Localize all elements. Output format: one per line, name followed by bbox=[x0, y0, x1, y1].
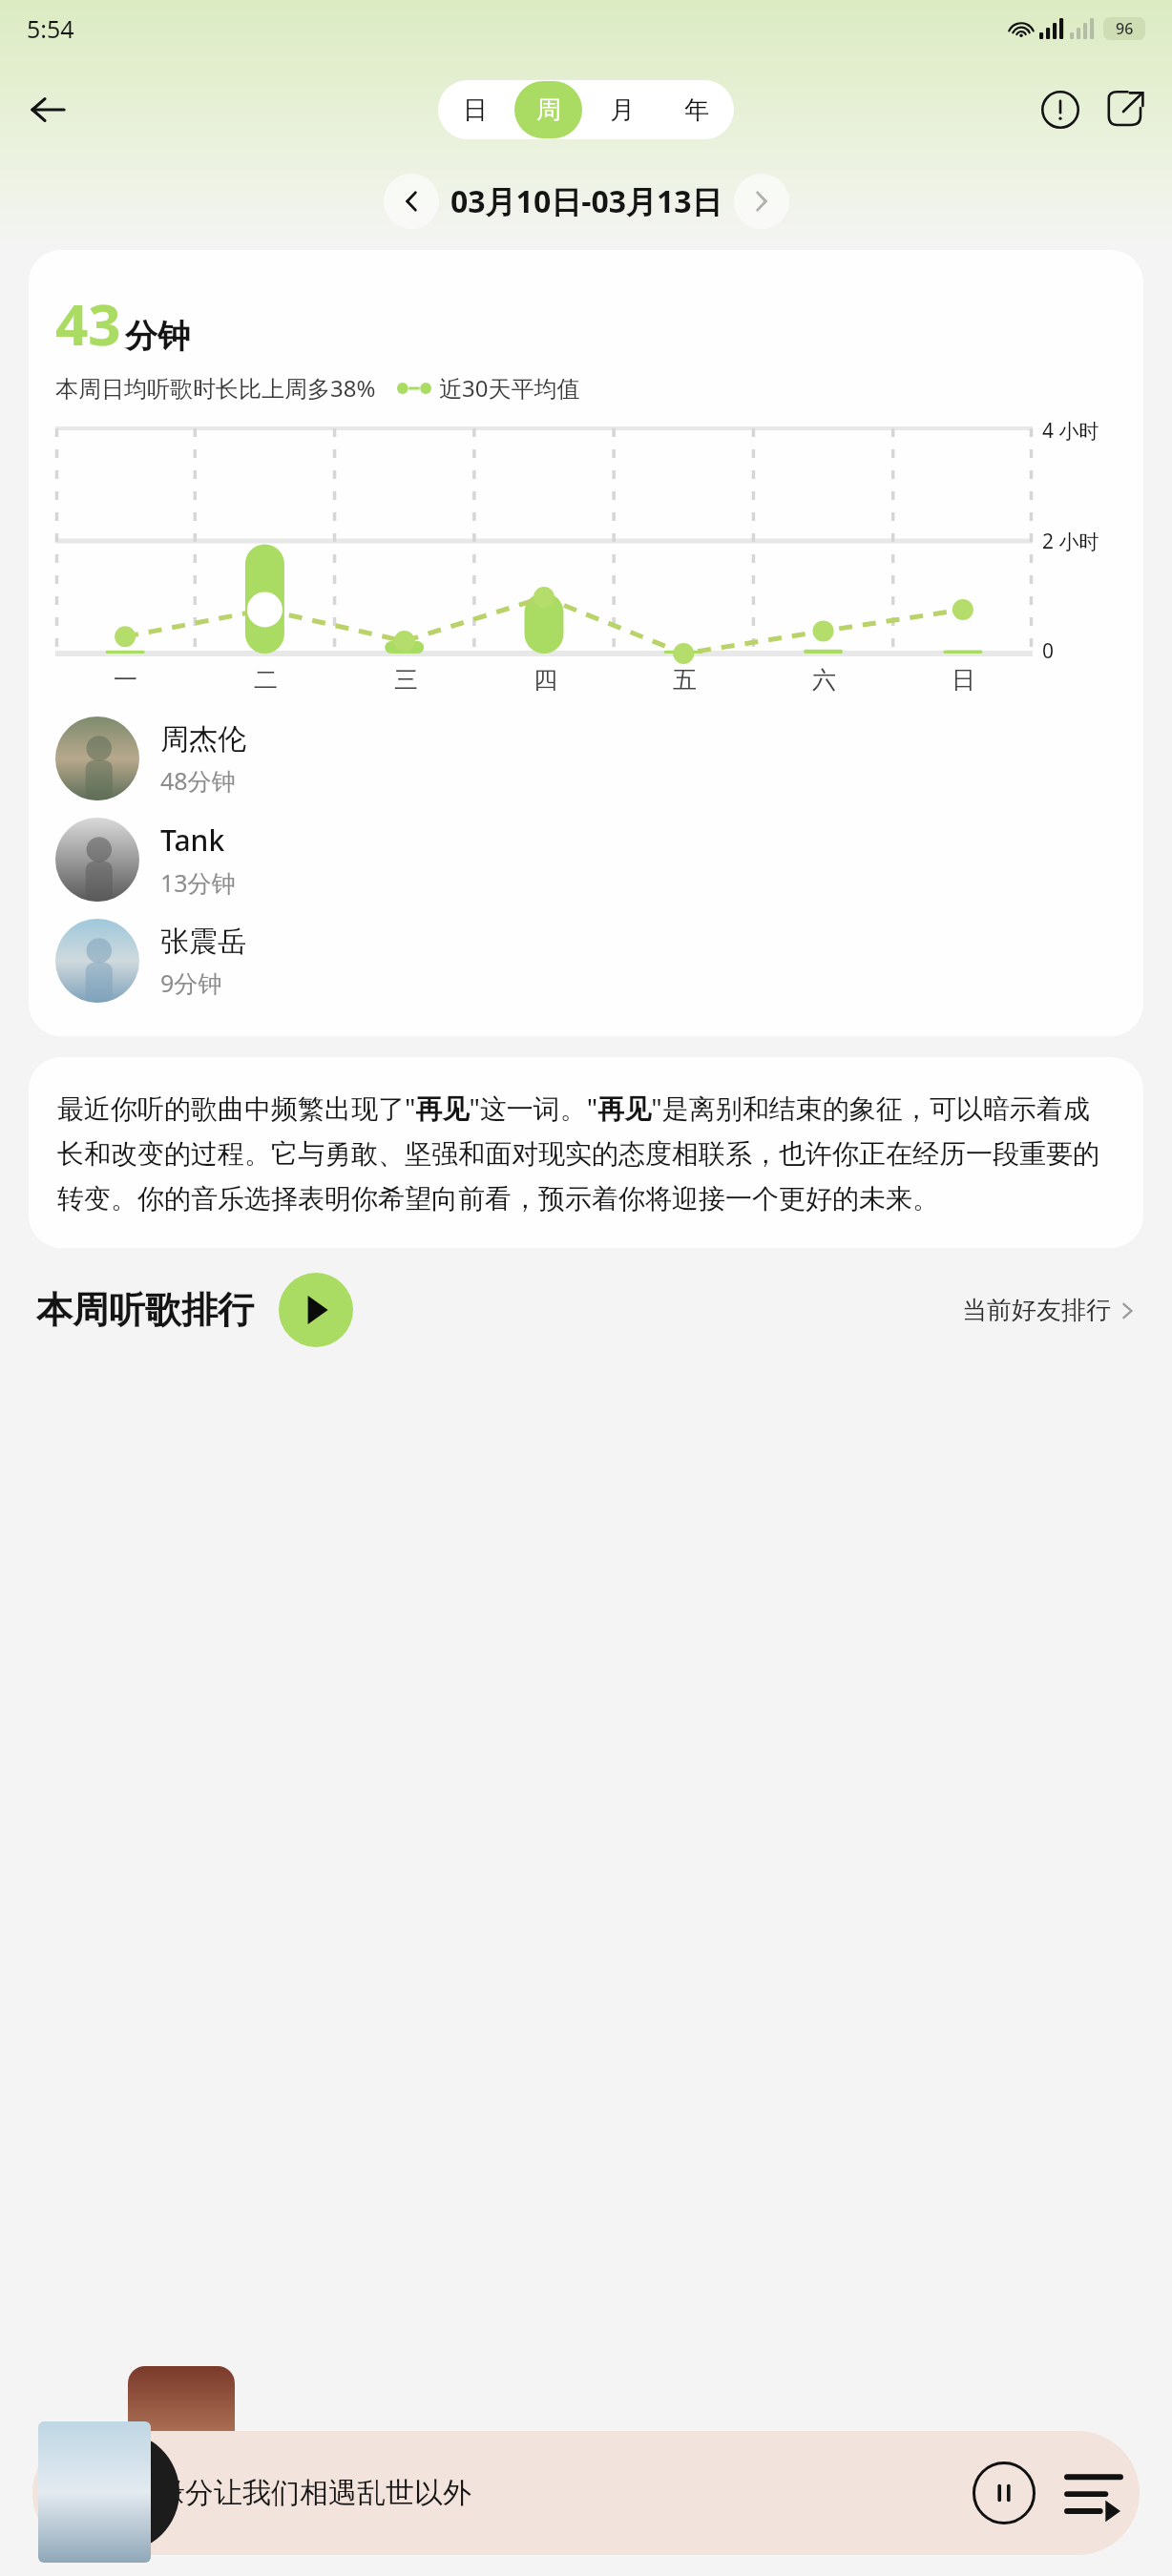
staticText: 日 bbox=[952, 665, 975, 695]
button[interactable]: 年 bbox=[659, 80, 734, 139]
staticText: 二 bbox=[254, 665, 278, 695]
button[interactable]: Play all bbox=[279, 1273, 353, 1347]
button[interactable]: Tank bbox=[55, 809, 1117, 910]
button[interactable]: Previous week bbox=[384, 174, 439, 229]
staticText: 张震岳 bbox=[160, 924, 246, 960]
staticText: 4 小时 bbox=[1042, 417, 1099, 445]
button[interactable]: Back bbox=[17, 79, 78, 140]
staticText: 本周听歌排行 bbox=[36, 1287, 254, 1333]
button[interactable]: 日 bbox=[438, 80, 512, 139]
staticText: 48分钟 bbox=[160, 764, 236, 797]
button[interactable]: Info bbox=[1031, 80, 1090, 139]
staticText: 一 bbox=[114, 665, 137, 695]
staticText: 日 bbox=[463, 94, 488, 126]
button[interactable]: Playlist bbox=[1057, 2457, 1130, 2529]
staticText: 周杰伦 bbox=[160, 721, 246, 758]
button[interactable]: 周杰伦 bbox=[55, 708, 1117, 809]
staticText: 近30天平均值 bbox=[439, 372, 580, 404]
staticText: 43 bbox=[55, 284, 121, 363]
button[interactable]: Next week bbox=[734, 174, 789, 229]
staticText: Tank bbox=[160, 821, 225, 860]
staticText: 03月10日-03月13日 bbox=[450, 180, 722, 222]
staticText: 月 bbox=[610, 94, 635, 126]
staticText: 周 bbox=[536, 94, 561, 126]
staticText: 分钟 bbox=[125, 316, 190, 357]
staticText: 9分钟 bbox=[160, 966, 222, 999]
staticText: 六 bbox=[812, 665, 836, 695]
staticText: 最近你听的歌曲中频繁出现了"再见"这一词。"再见"是离别和结束的象征，可以暗示着… bbox=[57, 1090, 1115, 1215]
staticText: 缘分让我们相遇乱世以外 bbox=[157, 2475, 471, 2511]
staticText: 13分钟 bbox=[160, 866, 236, 899]
button[interactable]: Pause bbox=[968, 2457, 1040, 2529]
button[interactable]: 周 bbox=[514, 81, 582, 138]
staticText: 5:54 bbox=[27, 12, 74, 45]
staticText: 本周日均听歌时长比上周多38% bbox=[55, 372, 376, 404]
staticText: 2 小时 bbox=[1042, 528, 1099, 555]
staticText: 三 bbox=[394, 665, 418, 695]
staticText: 0 bbox=[1042, 637, 1055, 665]
button[interactable]: 最近你听的歌曲中频繁出现了"再见"这一词。"再见"是离别和结束的象征，可以暗示着… bbox=[29, 1057, 1143, 1248]
button[interactable]: 张震岳 bbox=[55, 910, 1117, 1011]
button[interactable]: Share bbox=[1096, 80, 1155, 139]
staticText: 年 bbox=[684, 94, 709, 126]
staticText: 当前好友排行 bbox=[962, 1295, 1111, 1326]
button[interactable]: 月 bbox=[585, 80, 659, 139]
staticText: 五 bbox=[673, 665, 697, 695]
button[interactable]: 43 bbox=[29, 250, 1143, 1036]
button[interactable]: 当前好友排行 bbox=[962, 1295, 1136, 1326]
staticText: 四 bbox=[534, 665, 557, 695]
staticText: 96 bbox=[1116, 18, 1134, 39]
button[interactable]: 缘分让我们相遇乱世以外 bbox=[32, 2431, 1140, 2555]
